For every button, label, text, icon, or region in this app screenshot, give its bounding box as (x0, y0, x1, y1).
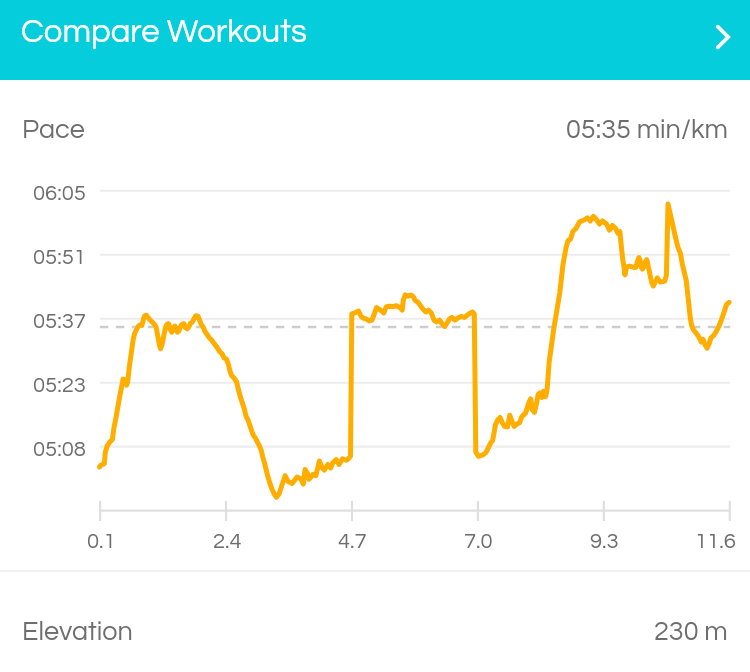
button[interactable]: Next workout (701, 15, 745, 59)
staticText: 2.4 (213, 530, 242, 553)
staticText: Compare Workouts (21, 15, 307, 49)
staticText: 05:51 (33, 246, 86, 269)
staticText: 05:23 (33, 374, 86, 397)
staticText: 4.7 (338, 530, 367, 553)
staticText: 05:37 (33, 310, 86, 333)
staticText: 05:35 min/km (566, 116, 728, 144)
staticText: 9.3 (590, 530, 619, 553)
staticText: 05:08 (33, 438, 86, 461)
staticText: 06:05 (33, 182, 86, 205)
staticText: 7.0 (464, 530, 493, 553)
staticText: Pace (22, 116, 85, 144)
staticText: 230 m (654, 618, 728, 646)
staticText: 0.1 (87, 530, 116, 553)
staticText: 11.6 (695, 530, 736, 553)
staticText: Elevation (22, 618, 133, 646)
button[interactable]: Elevation (0, 572, 750, 672)
button[interactable]: Pace (0, 80, 750, 179)
button[interactable]: Compare Workouts (0, 0, 750, 80)
